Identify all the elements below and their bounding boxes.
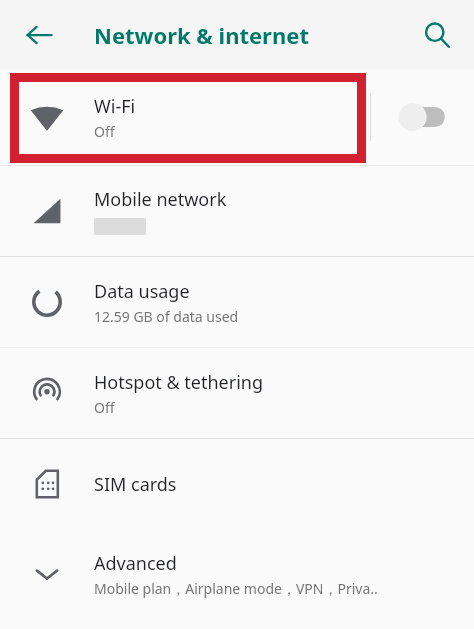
button[interactable]: Wi-Fi: [0, 69, 474, 165]
button[interactable]: Wi-Fi toggle: [371, 69, 474, 165]
button[interactable]: Back: [16, 12, 62, 58]
staticText: Off: [94, 122, 115, 141]
button[interactable]: Mobile network: [0, 166, 474, 256]
button[interactable]: SIM cards: [0, 439, 474, 529]
button[interactable]: Advanced: [0, 529, 474, 619]
staticText: Hotspot & tethering: [94, 370, 264, 395]
staticText: SIM cards: [94, 472, 177, 497]
staticText: Advanced: [94, 551, 177, 576]
staticText: 12.59 GB of data used: [94, 307, 239, 326]
staticText: Off: [94, 398, 115, 417]
staticText: Mobile plan，Airplane mode，VPN，Priva..: [94, 579, 378, 598]
button[interactable]: Search: [414, 12, 460, 58]
staticText: Wi-Fi: [94, 94, 136, 119]
button[interactable]: Data usage: [0, 257, 474, 347]
staticText: Data usage: [94, 279, 190, 304]
staticText: Mobile network: [94, 187, 227, 212]
button[interactable]: Hotspot & tethering: [0, 348, 474, 438]
staticText: Network & internet: [94, 20, 309, 50]
